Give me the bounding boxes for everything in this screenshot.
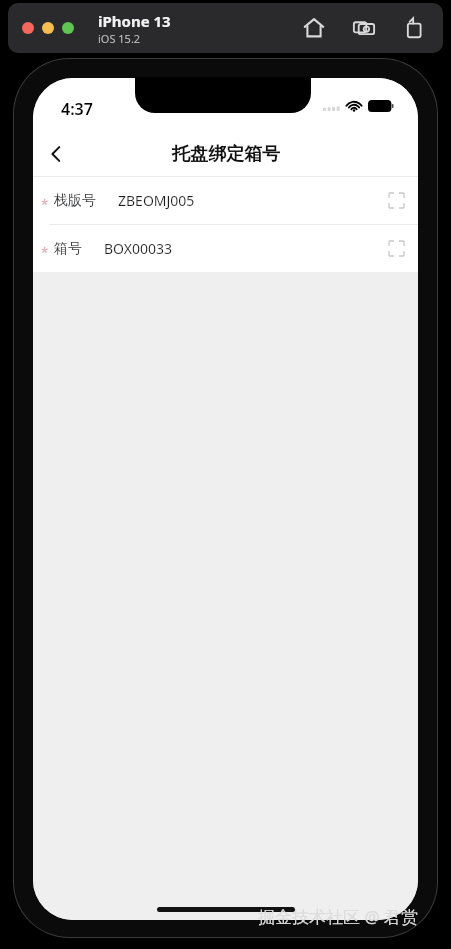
staticText: *	[41, 195, 49, 213]
staticText: 4:37	[61, 98, 93, 120]
staticText: ZBEOMJ005	[118, 191, 195, 210]
button[interactable]: Rotate	[397, 11, 431, 45]
staticText: *	[41, 243, 49, 261]
button[interactable]: *	[33, 177, 418, 224]
staticText: 箱号	[54, 240, 82, 258]
staticText: BOX00033	[104, 239, 172, 258]
button[interactable]: Home	[297, 11, 331, 45]
staticText: iOS 15.2	[98, 31, 141, 46]
staticText: 栈版号	[54, 192, 96, 210]
staticText: iPhone 13	[98, 11, 171, 31]
button[interactable]: Back	[33, 132, 79, 176]
button[interactable]: Scan 栈版号	[374, 177, 418, 224]
button[interactable]: *	[33, 225, 418, 272]
staticText: 掘金技术社区 @ 君赏	[258, 905, 419, 928]
staticText: 托盘绑定箱号	[172, 143, 280, 166]
button[interactable]: Screenshot	[347, 11, 381, 45]
button[interactable]: Scan 箱号	[374, 225, 418, 272]
